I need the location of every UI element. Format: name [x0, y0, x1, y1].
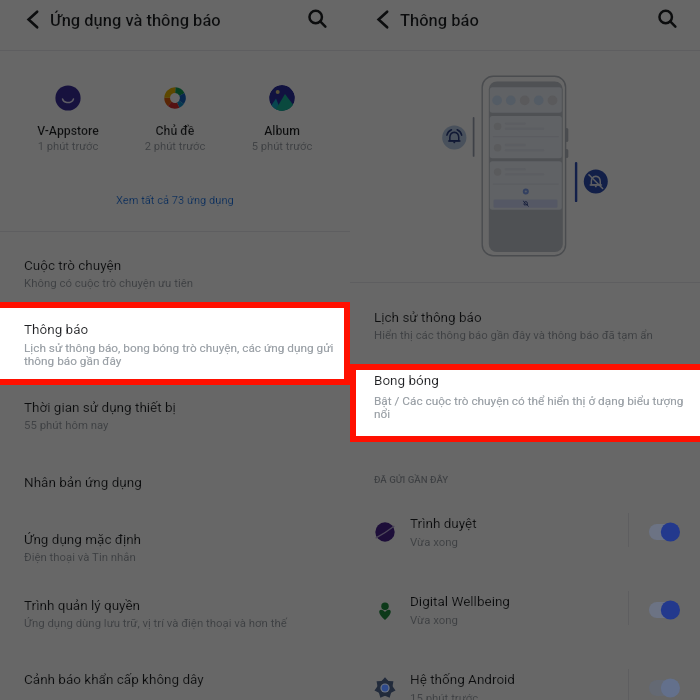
staticText: Hiển thị các thông báo gần đây và thông …: [374, 328, 653, 341]
staticText: Digital Wellbeing: [410, 593, 510, 609]
staticText: Vừa xong: [410, 613, 458, 626]
staticText: Điện thoại và Tin nhắn: [24, 550, 136, 563]
staticText: nổi: [374, 407, 391, 421]
button[interactable]: Cảnh báo khẩn cấp không dây: [0, 671, 350, 695]
button[interactable]: Chủ đề: [125, 85, 225, 153]
button[interactable]: Ứng dụng mặc định: [0, 531, 350, 573]
staticText: Không có cuộc trò chuyện ưu tiên: [24, 276, 194, 289]
button[interactable]: Back: [370, 6, 396, 32]
staticText: Thông báo: [400, 11, 479, 30]
staticText: Hệ thống Android: [410, 671, 515, 687]
button[interactable]: Nhân bản ứng dụng: [0, 474, 350, 498]
staticText: Cảnh báo khẩn cấp không dây: [24, 671, 204, 687]
staticText: Trình duyệt: [410, 515, 477, 531]
button[interactable]: Lịch sử thông báo: [350, 309, 700, 351]
staticText: Xem tất cả 73 ứng dụng: [116, 194, 234, 207]
staticText: 5 phút trước: [232, 140, 332, 153]
staticText: Lịch sử thông báo, bong bóng trò chuyện,…: [24, 341, 334, 355]
staticText: 2 phút trước: [125, 140, 225, 153]
staticText: Ứng dụng mặc định: [24, 531, 142, 547]
staticText: ĐÃ GỬI GẦN ĐÂY: [374, 474, 449, 485]
button[interactable]: Back: [20, 6, 46, 32]
staticText: Thông báo: [24, 321, 89, 337]
button[interactable]: Toggle on: [649, 522, 680, 542]
staticText: Album: [232, 124, 332, 138]
button[interactable]: Cuộc trò chuyện: [0, 257, 350, 299]
button[interactable]: Album: [232, 85, 332, 153]
staticText: 15 phút trước: [410, 691, 479, 700]
staticText: thông báo gần đây: [24, 354, 122, 368]
button[interactable]: Search: [304, 5, 330, 31]
button[interactable]: Trình duyệt: [350, 505, 700, 583]
staticText: Chủ đề: [125, 124, 225, 138]
button[interactable]: V-Appstore: [18, 85, 118, 153]
button[interactable]: Thời gian sử dụng thiết bị: [0, 399, 350, 441]
staticText: Bật / Các cuộc trò chuyện có thể hiển th…: [374, 394, 684, 408]
button[interactable]: Digital Wellbeing: [350, 583, 700, 661]
staticText: Ứng dụng dùng lưu trữ, vị trí và điện th…: [24, 616, 287, 629]
staticText: Lịch sử thông báo: [374, 309, 482, 325]
staticText: Thời gian sử dụng thiết bị: [24, 399, 176, 415]
button[interactable]: Thông báo: [0, 308, 344, 379]
staticText: V-Appstore: [18, 124, 118, 138]
button[interactable]: Toggle off: [649, 678, 680, 698]
button[interactable]: Hệ thống Android: [350, 661, 700, 700]
button[interactable]: Toggle on: [649, 600, 680, 620]
staticText: Ứng dụng và thông báo: [50, 11, 221, 30]
button[interactable]: Bong bóng: [356, 370, 700, 436]
staticText: Vừa xong: [410, 535, 458, 548]
staticText: 55 phút hôm nay: [24, 418, 109, 431]
staticText: Trình quản lý quyền: [24, 597, 141, 613]
button[interactable]: Trình quản lý quyền: [0, 597, 350, 639]
staticText: 1 phút trước: [18, 140, 118, 153]
staticText: Cuộc trò chuyện: [24, 257, 122, 273]
button[interactable]: Search: [654, 5, 680, 31]
button[interactable]: Xem tất cả 73 ứng dụng: [60, 188, 290, 212]
staticText: Nhân bản ứng dụng: [24, 474, 142, 490]
staticText: Bong bóng: [374, 372, 439, 388]
